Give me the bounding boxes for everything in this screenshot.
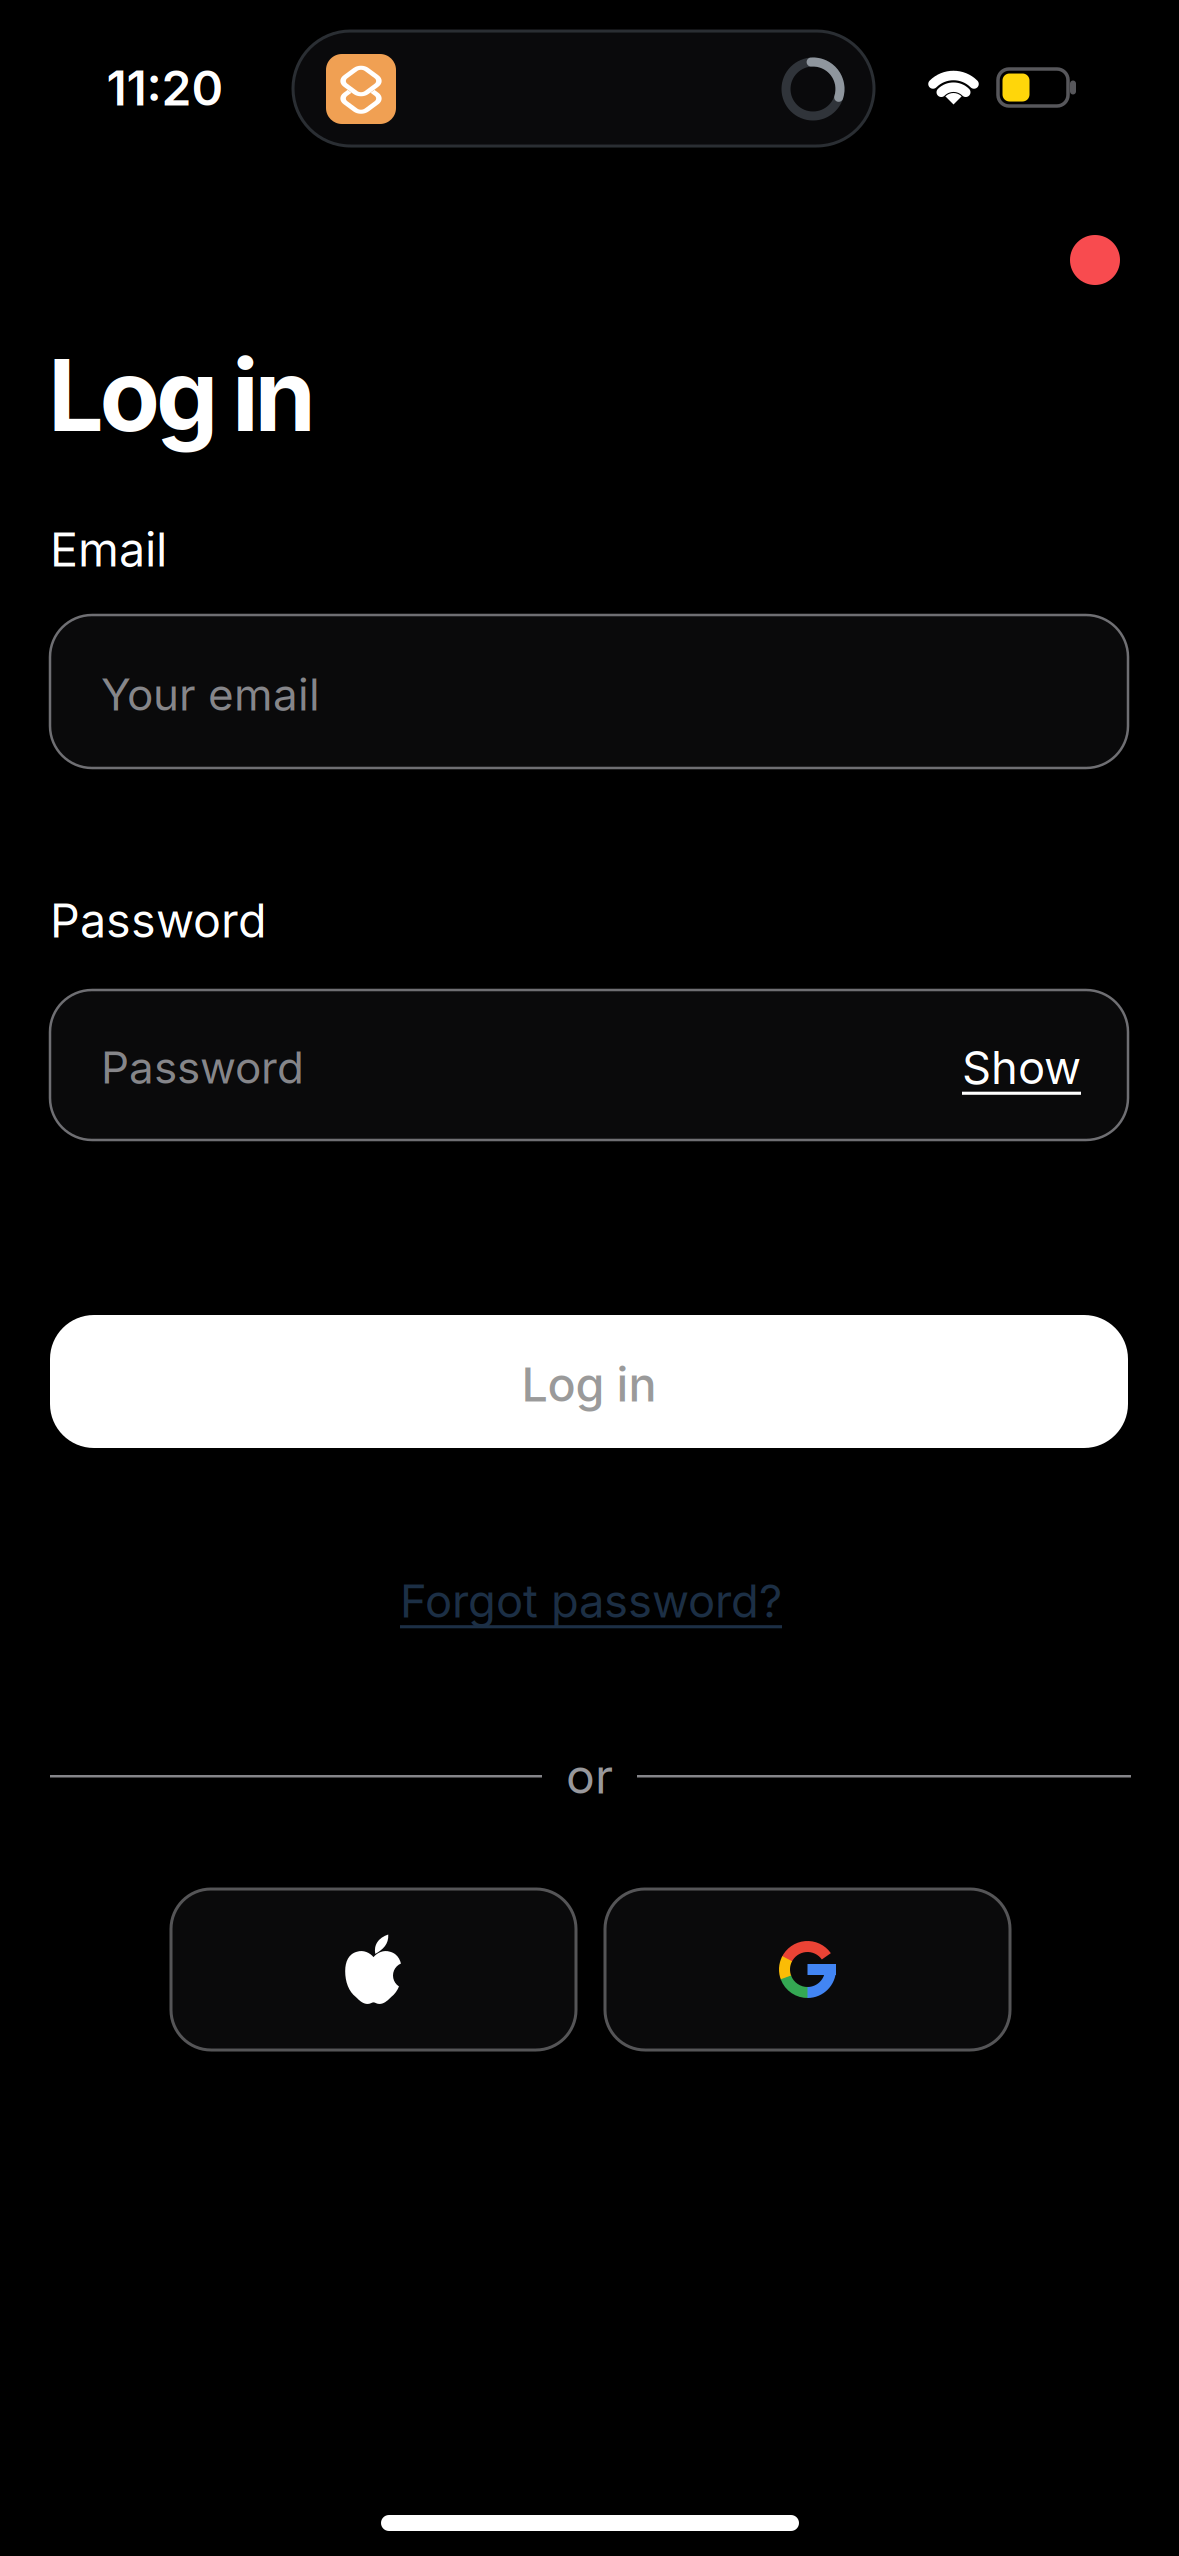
staticText: Password [50,893,267,948]
button[interactable]: Password [50,990,1128,1140]
button[interactable] [605,1889,1010,2050]
staticText: Password [101,1041,304,1093]
button[interactable]: Your email [50,615,1128,768]
button[interactable]: Log in [50,1315,1128,1448]
staticText: Forgot password? [400,1574,782,1628]
staticText: 11:20 [106,60,223,116]
staticText: Show [962,1041,1081,1094]
button[interactable] [171,1889,576,2050]
button[interactable]: Forgot password? [400,1574,782,1628]
staticText: Log in [521,1357,656,1412]
staticText: Your email [101,668,320,720]
staticText: Log in [48,337,315,453]
button[interactable]: Show [962,1041,1081,1094]
staticText: Email [50,522,167,577]
staticText: or [566,1748,613,1804]
